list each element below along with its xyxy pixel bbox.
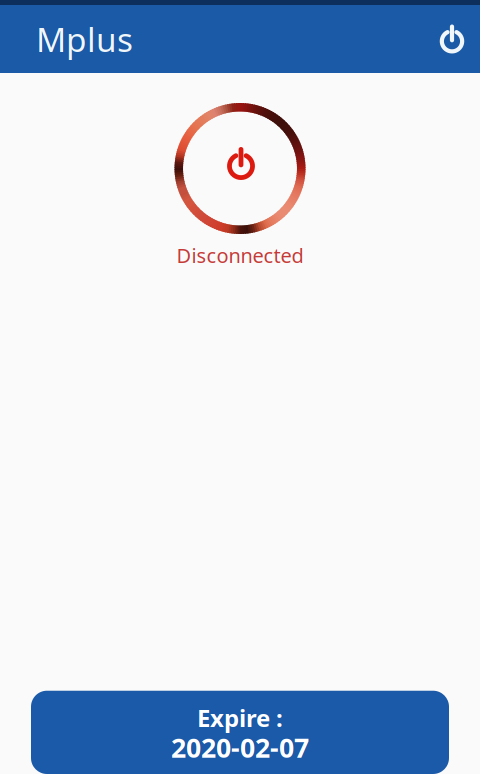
button[interactable]: Connect: [174, 103, 305, 269]
staticText: 2020-02-07: [171, 730, 309, 765]
button[interactable]: Power: [426, 13, 478, 65]
staticText: Expire :: [197, 702, 283, 734]
staticText: Mplus: [36, 17, 133, 61]
staticText: Disconnected: [176, 242, 303, 269]
